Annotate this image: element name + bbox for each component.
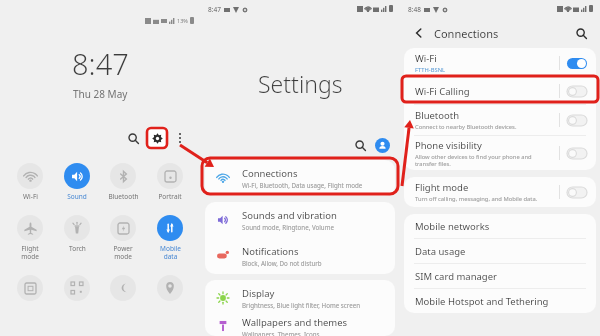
- staticText: Sound mode, Ringtone, Volume: [242, 223, 334, 231]
- button[interactable]: Wi-Fi toggle: [567, 58, 587, 69]
- button[interactable]: Account: [375, 138, 390, 153]
- button[interactable]: Power mode: [101, 215, 145, 261]
- button[interactable]: LOC: [148, 275, 192, 301]
- staticText: Data usage: [415, 245, 466, 258]
- staticText: Settings: [258, 68, 343, 99]
- button[interactable]: Wi-Fi: [8, 163, 52, 201]
- staticText: Connections: [242, 167, 298, 180]
- button[interactable]: Phone visibility: [404, 136, 596, 170]
- button[interactable]: Sounds and vibration: [205, 202, 395, 238]
- staticText: Turn off calling, messaging, and Mobile …: [415, 195, 538, 203]
- staticText: Thu 28 May: [73, 87, 128, 101]
- staticText: Sounds and vibration: [242, 209, 337, 222]
- staticText: 13%: [177, 17, 188, 24]
- staticText: 8:48: [408, 5, 421, 14]
- button[interactable]: Notifications: [205, 238, 395, 274]
- staticText: Phone visibility: [415, 139, 482, 152]
- staticText: Wallpapers, Themes, Icons: [242, 330, 320, 336]
- button[interactable]: Flight mode: [404, 177, 596, 207]
- staticText: Portrait: [158, 192, 182, 201]
- button[interactable]: Search: [572, 24, 590, 42]
- button[interactable]: Settings: [147, 128, 167, 148]
- button[interactable]: MOON: [101, 275, 145, 301]
- button[interactable]: Data usage: [404, 239, 596, 263]
- staticText: Mobile data: [160, 244, 181, 261]
- button[interactable]: Sound: [55, 163, 99, 201]
- staticText: 8:47: [72, 44, 129, 83]
- button[interactable]: Connections: [205, 160, 395, 196]
- staticText: Flight mode: [21, 244, 39, 261]
- button[interactable]: Mobile networks: [404, 214, 596, 238]
- button[interactable]: Search: [351, 136, 369, 154]
- button[interactable]: Bluetooth toggle: [567, 115, 587, 126]
- staticText: Wi-Fi: [415, 52, 437, 65]
- staticText: Allow other devices to find your phone a…: [415, 153, 553, 168]
- staticText: Mobile Hotspot and Tethering: [415, 295, 549, 308]
- staticText: Wi-Fi Calling: [415, 85, 470, 98]
- button[interactable]: Search: [123, 128, 143, 148]
- staticText: 8:47: [208, 5, 221, 14]
- staticText: Connections: [434, 26, 499, 41]
- button[interactable]: Wi-Fi: [404, 48, 596, 78]
- button[interactable]: SIM: [8, 275, 52, 301]
- button[interactable]: Flight mode toggle: [567, 187, 587, 198]
- button[interactable]: QR: [55, 275, 99, 301]
- staticText: Power mode: [113, 244, 133, 261]
- button[interactable]: Wi-Fi Calling: [404, 78, 596, 104]
- staticText: Flight mode: [415, 181, 469, 194]
- button[interactable]: Portrait: [148, 163, 192, 201]
- staticText: Mobile networks: [415, 220, 490, 233]
- button[interactable]: Mobile data: [148, 215, 192, 261]
- button[interactable]: Torch: [55, 215, 99, 253]
- button[interactable]: Wi-Fi Calling toggle: [567, 86, 587, 97]
- button[interactable]: SIM card manager: [404, 264, 596, 288]
- staticText: Brightness, Blue light filter, Home scre…: [242, 301, 361, 309]
- staticText: Bluetooth: [415, 109, 460, 122]
- staticText: Notifications: [242, 245, 299, 258]
- staticText: Torch: [69, 244, 86, 253]
- button[interactable]: More options: [172, 130, 188, 146]
- button[interactable]: Phone visibility toggle: [567, 148, 587, 159]
- staticText: FTTH-BSNL: [415, 66, 446, 74]
- staticText: Block, Allow, Do not disturb: [242, 259, 322, 267]
- staticText: Wallpapers and themes: [242, 316, 348, 329]
- staticText: SIM card manager: [415, 270, 497, 283]
- staticText: Sound: [67, 192, 87, 201]
- button[interactable]: Bluetooth: [404, 105, 596, 135]
- button[interactable]: Display: [205, 280, 395, 316]
- button[interactable]: Wallpapers and themes: [205, 316, 395, 336]
- button[interactable]: Back: [410, 24, 428, 42]
- staticText: Bluetooth: [108, 192, 139, 201]
- button[interactable]: Mobile Hotspot and Tethering: [404, 289, 596, 313]
- button[interactable]: Bluetooth: [101, 163, 145, 201]
- button[interactable]: Flight mode: [8, 215, 52, 261]
- staticText: Wi-Fi, Bluetooth, Data usage, Flight mod…: [242, 181, 363, 189]
- staticText: Display: [242, 287, 275, 300]
- staticText: Wi-Fi: [23, 192, 38, 201]
- staticText: Connect to nearby Bluetooth devices.: [415, 123, 517, 131]
